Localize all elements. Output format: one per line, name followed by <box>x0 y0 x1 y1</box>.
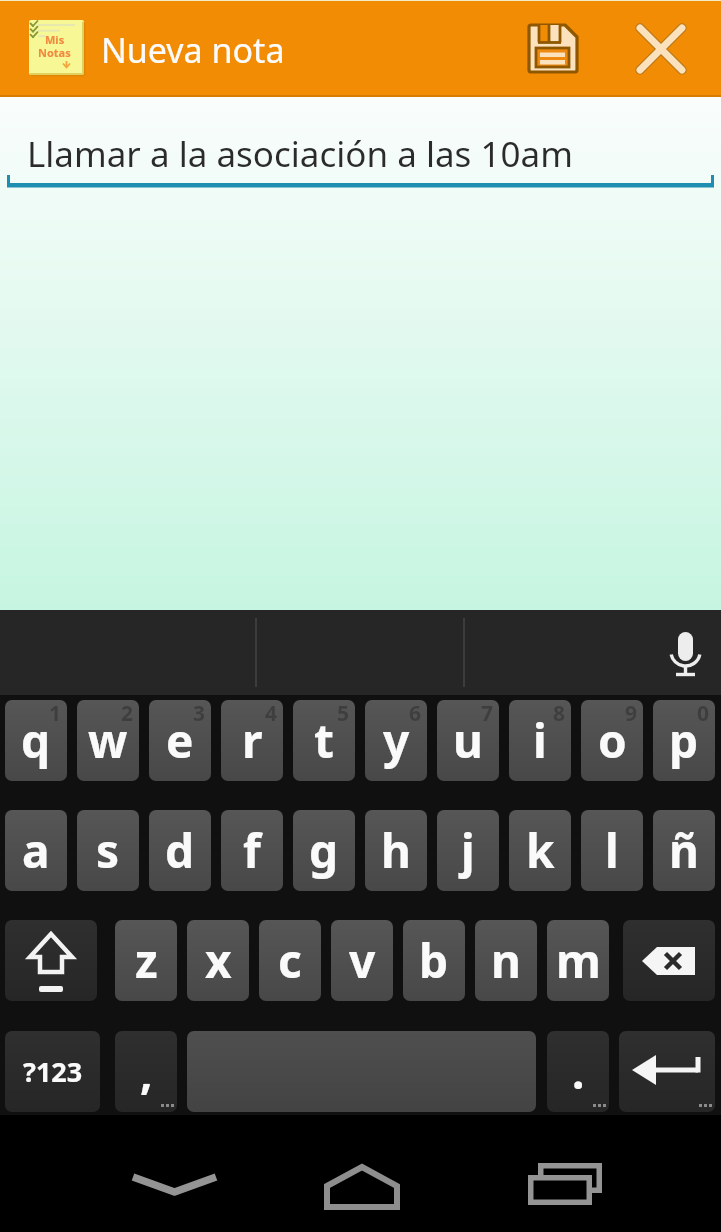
staticText: s <box>96 819 120 882</box>
button[interactable]: s <box>77 810 139 891</box>
button[interactable] <box>187 1031 536 1112</box>
staticText: y <box>383 709 410 772</box>
staticText: o <box>598 709 627 772</box>
button[interactable]: f <box>221 810 283 891</box>
staticText: x <box>205 929 232 992</box>
button[interactable]: v <box>331 920 393 1001</box>
staticText: k <box>526 819 555 882</box>
staticText: . <box>572 1042 585 1102</box>
staticText: 3 <box>193 700 206 728</box>
button[interactable]: y <box>365 700 427 781</box>
staticText: Notas <box>38 45 71 60</box>
button[interactable]: i <box>509 700 571 781</box>
staticText: Llamar a la asociación a las 10am <box>27 130 573 178</box>
button[interactable] <box>324 1164 400 1210</box>
button[interactable]: Mis <box>28 19 86 77</box>
button[interactable]: h <box>365 810 427 891</box>
button[interactable] <box>528 1162 604 1206</box>
button[interactable]: p <box>653 700 715 781</box>
button[interactable]: x <box>187 920 249 1001</box>
staticText: , <box>140 1042 153 1102</box>
staticText: 0 <box>697 700 710 728</box>
staticText: 6 <box>409 700 422 728</box>
button[interactable]: g <box>293 810 355 891</box>
button[interactable] <box>619 1031 715 1112</box>
button[interactable]: , <box>115 1031 177 1112</box>
button[interactable]: l <box>581 810 643 891</box>
staticText: t <box>314 709 334 772</box>
button[interactable] <box>5 920 97 1001</box>
staticText: q <box>21 709 51 772</box>
button[interactable]: o <box>581 700 643 781</box>
button[interactable]: ?123 <box>5 1031 100 1112</box>
staticText: n <box>491 929 521 992</box>
staticText: b <box>419 929 449 992</box>
staticText: g <box>309 819 339 882</box>
button[interactable] <box>668 628 704 680</box>
staticText: l <box>605 819 619 882</box>
staticText: z <box>135 929 158 992</box>
staticText: 1 <box>49 700 62 728</box>
button[interactable]: a <box>5 810 67 891</box>
staticText: a <box>22 819 50 882</box>
button[interactable]: j <box>437 810 499 891</box>
button[interactable] <box>131 1173 218 1197</box>
button[interactable]: k <box>509 810 571 891</box>
staticText: u <box>453 709 483 772</box>
staticText: Mis <box>45 32 65 47</box>
button[interactable]: d <box>149 810 211 891</box>
button[interactable]: r <box>221 700 283 781</box>
staticText: v <box>349 929 376 992</box>
button[interactable]: b <box>403 920 465 1001</box>
button[interactable]: t <box>293 700 355 781</box>
button[interactable]: u <box>437 700 499 781</box>
staticText: ñ <box>669 819 699 882</box>
staticText: 2 <box>121 700 134 728</box>
button[interactable]: m <box>547 920 609 1001</box>
button[interactable]: e <box>149 700 211 781</box>
staticText: h <box>381 819 411 882</box>
button[interactable]: c <box>259 920 321 1001</box>
button[interactable] <box>522 17 583 78</box>
staticText: ?123 <box>23 1053 83 1090</box>
staticText: 7 <box>481 700 494 728</box>
staticText: p <box>669 709 699 772</box>
button[interactable]: z <box>115 920 177 1001</box>
button[interactable]: ñ <box>653 810 715 891</box>
button[interactable] <box>623 920 715 1001</box>
button[interactable] <box>7 121 714 189</box>
button[interactable]: q <box>5 700 67 781</box>
staticText: w <box>88 709 128 772</box>
button[interactable]: . <box>547 1031 609 1112</box>
staticText: m <box>556 929 601 992</box>
staticText: d <box>165 819 195 882</box>
button[interactable]: w <box>77 700 139 781</box>
staticText: e <box>166 709 194 772</box>
staticText: 8 <box>553 700 566 728</box>
staticText: c <box>278 929 302 992</box>
staticText: j <box>461 819 475 882</box>
staticText: r <box>242 709 263 772</box>
staticText: f <box>243 819 261 882</box>
staticText: Nueva nota <box>101 27 285 73</box>
staticText: 9 <box>625 700 638 728</box>
button[interactable] <box>629 17 693 81</box>
staticText: i <box>533 709 547 772</box>
staticText: 5 <box>337 700 350 728</box>
staticText: 4 <box>265 700 278 728</box>
button[interactable]: n <box>475 920 537 1001</box>
